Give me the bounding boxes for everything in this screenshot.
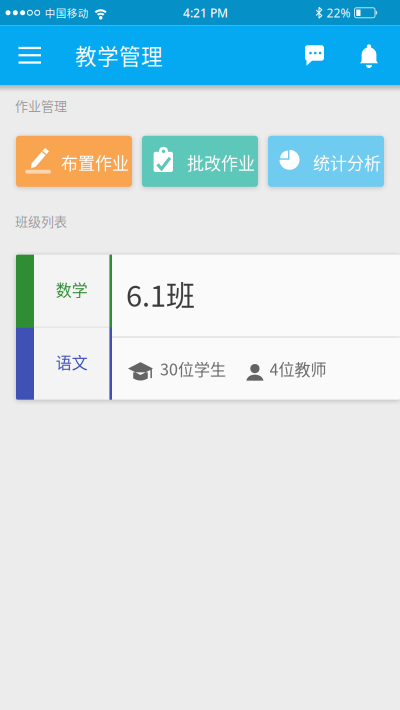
staticText: 4位教师 bbox=[269, 357, 326, 380]
staticText: 教学管理 bbox=[75, 40, 163, 71]
staticText: 数学 bbox=[56, 278, 88, 301]
staticText: 中国移动 bbox=[45, 5, 89, 20]
button[interactable]: Menu bbox=[0, 37, 41, 74]
staticText: 统计分析 bbox=[313, 150, 381, 175]
staticText: 6.1班 bbox=[126, 273, 195, 315]
staticText: 30位学生 bbox=[160, 357, 226, 380]
staticText: 批改作业 bbox=[187, 150, 255, 175]
staticText: 作业管理 bbox=[15, 96, 67, 115]
staticText: 班级列表 bbox=[15, 211, 67, 230]
button[interactable]: 布置作业 bbox=[16, 136, 132, 187]
button[interactable]: 数学 bbox=[16, 255, 109, 327]
staticText: 语文 bbox=[56, 350, 88, 373]
button[interactable]: 语文 bbox=[16, 327, 109, 400]
button[interactable]: 批改作业 bbox=[142, 136, 258, 187]
staticText: 布置作业 bbox=[61, 150, 129, 175]
staticText: 22% bbox=[326, 5, 350, 21]
button[interactable]: Messages bbox=[299, 38, 334, 72]
button[interactable]: 6.1班 bbox=[112, 255, 400, 400]
button[interactable]: Notifications bbox=[353, 37, 385, 74]
staticText: 4:21 PM bbox=[183, 5, 228, 21]
button[interactable]: 统计分析 bbox=[268, 136, 384, 187]
